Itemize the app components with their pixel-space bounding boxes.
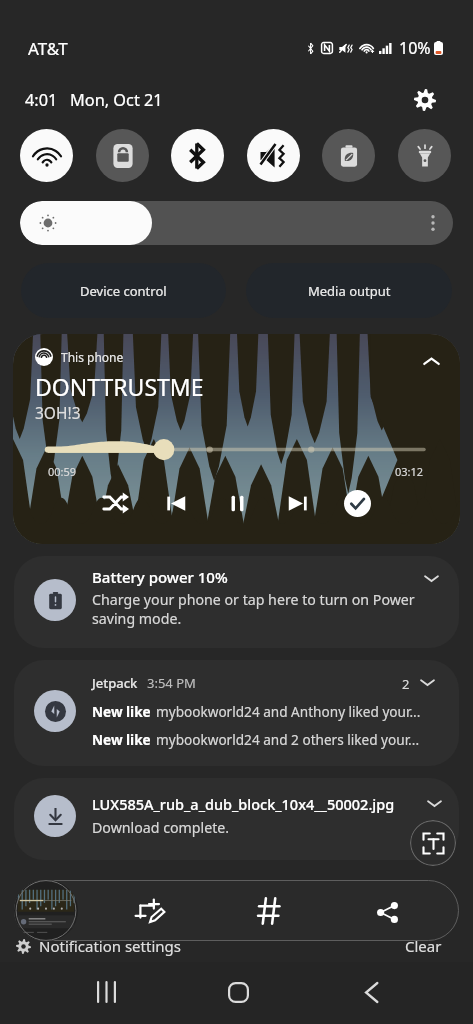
button[interactable]: Crop and edit — [130, 891, 170, 931]
staticText: Jetpack — [92, 674, 138, 692]
staticText: Notification settings — [39, 936, 181, 956]
button[interactable]: Screenshot preview — [14, 880, 78, 941]
button[interactable]: Back — [351, 972, 391, 1012]
staticText: 03:12 — [395, 464, 424, 479]
staticText: Media output — [308, 282, 391, 300]
staticText: New like — [92, 702, 151, 721]
button[interactable]: Sound mode — [247, 129, 300, 182]
button[interactable]: Bluetooth — [171, 129, 224, 182]
staticText: Battery power 10% — [92, 567, 228, 587]
staticText: 10% — [399, 37, 431, 59]
staticText: 2 — [402, 675, 410, 693]
button[interactable]: Device control — [21, 263, 226, 318]
button[interactable]: Expand — [421, 790, 447, 816]
staticText: AT&T — [28, 37, 68, 60]
staticText: 4:01 Mon, Oct 21 — [25, 89, 163, 111]
staticText: mybookworld24 and 2 others liked your... — [156, 730, 420, 749]
staticText: Charge your phone or tap here to turn on… — [92, 590, 432, 628]
button[interactable]: Expand — [414, 669, 440, 695]
button[interactable]: Power saving — [322, 129, 375, 182]
button[interactable]: Extract text — [410, 820, 456, 866]
button[interactable]: Notification settings — [16, 936, 181, 956]
button[interactable]: Expand — [418, 565, 444, 591]
button[interactable]: Jetpack — [14, 660, 459, 766]
button[interactable]: Shuffle — [96, 483, 136, 523]
button[interactable]: Previous — [156, 483, 196, 523]
staticText: LUX585A_rub_a_dub_block_10x4__50002.jpg — [92, 794, 395, 814]
staticText: 00:59 — [48, 464, 77, 479]
button[interactable]: Collapse — [416, 346, 446, 376]
button[interactable]: Confirm — [337, 483, 377, 523]
button[interactable]: Battery power 10% — [14, 556, 459, 648]
button[interactable] — [20, 201, 453, 245]
button[interactable]: Home — [218, 972, 258, 1012]
button[interactable]: Next — [277, 483, 317, 523]
staticText: This phone — [61, 349, 124, 365]
button[interactable]: This phone — [13, 334, 460, 544]
staticText: DONTTRUSTME — [35, 371, 204, 402]
button[interactable]: Recents — [86, 972, 126, 1012]
button[interactable]: Flashlight — [398, 129, 451, 182]
button[interactable]: Media output — [246, 263, 452, 318]
button[interactable]: Clear — [405, 936, 442, 956]
button[interactable]: LUX585A_rub_a_dub_block_10x4__50002.jpg — [14, 778, 459, 860]
button[interactable]: Tags — [249, 891, 289, 931]
button[interactable]: Screen lock — [96, 129, 149, 182]
staticText: 3OH!3 — [35, 402, 81, 423]
button[interactable]: Settings — [408, 84, 442, 116]
staticText: 3:54 PM — [147, 674, 196, 692]
staticText: New like — [92, 730, 151, 749]
button[interactable]: Wi-Fi — [20, 129, 73, 182]
button[interactable]: Pause — [217, 483, 257, 523]
staticText: Download complete. — [92, 818, 230, 837]
staticText: mybookworld24 and Anthony liked your... — [156, 702, 421, 721]
staticText: Device control — [80, 282, 167, 300]
button[interactable]: Share — [367, 892, 407, 932]
